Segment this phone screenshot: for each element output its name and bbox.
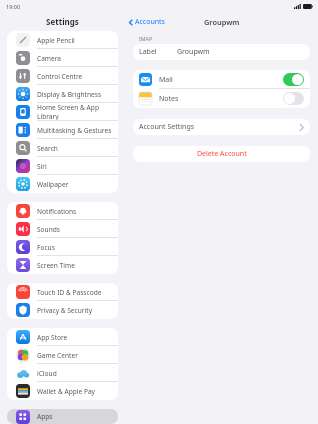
staticText: Home Screen & App Library xyxy=(37,103,118,121)
button[interactable]: Siri xyxy=(7,157,118,175)
button[interactable]: Notifications xyxy=(7,202,118,220)
button[interactable]: Account Settings xyxy=(133,119,310,135)
other: More xyxy=(299,123,304,132)
button[interactable]: Multitasking & Gestures xyxy=(7,121,118,139)
staticText: 19:00 xyxy=(6,3,21,10)
staticText: Multitasking & Gestures xyxy=(37,126,112,135)
button[interactable]: App Store xyxy=(7,328,118,346)
button[interactable]: Notes xyxy=(133,89,310,108)
staticText: Siri xyxy=(37,162,47,171)
button[interactable]: Home Screen & App Library xyxy=(7,103,118,121)
staticText: iCloud xyxy=(37,369,57,378)
staticText: Account Settings xyxy=(139,122,195,132)
staticText: Settings xyxy=(46,16,79,27)
staticText: Camera xyxy=(37,54,62,63)
button[interactable]: iCloud xyxy=(7,364,118,382)
button[interactable]: Apple Pencil xyxy=(7,31,118,49)
button[interactable]: Focus xyxy=(7,238,118,256)
staticText: Focus xyxy=(37,243,55,252)
button[interactable]: Display & Brightness xyxy=(7,85,118,103)
button[interactable]: Wallpaper xyxy=(7,175,118,193)
staticText: Accounts xyxy=(135,17,165,27)
staticText: Game Center xyxy=(37,351,78,360)
staticText: Mail xyxy=(159,75,173,85)
staticText: Privacy & Security xyxy=(37,306,92,315)
button[interactable]: Accounts xyxy=(125,15,169,29)
staticText: Delete Account xyxy=(197,149,247,159)
staticText: Notes xyxy=(159,94,179,104)
staticText: App Store xyxy=(37,333,68,342)
button[interactable]: Apps xyxy=(7,409,118,424)
button[interactable]: On xyxy=(283,73,304,86)
button[interactable]: Screen Time xyxy=(7,256,118,274)
staticText: Screen Time xyxy=(37,261,75,270)
staticText: Sounds xyxy=(37,225,60,234)
staticText: Wallpaper xyxy=(37,180,69,189)
staticText: IMAP xyxy=(139,35,153,42)
staticText: Apps xyxy=(37,412,53,421)
staticText: Label xyxy=(139,47,157,57)
button[interactable]: Search xyxy=(7,139,118,157)
button[interactable]: Mail xyxy=(133,70,310,89)
button[interactable]: Privacy & Security xyxy=(7,301,118,319)
staticText: Control Centre xyxy=(37,72,83,81)
button[interactable]: Camera xyxy=(7,49,118,67)
staticText: Apple Pencil xyxy=(37,36,75,45)
button[interactable]: Touch ID & Passcode xyxy=(7,283,118,301)
button[interactable]: Label xyxy=(133,44,310,60)
staticText: Wallet & Apple Pay xyxy=(37,387,95,396)
button[interactable]: Sounds xyxy=(7,220,118,238)
button[interactable]: Wallet & Apple Pay xyxy=(7,382,118,400)
staticText: Search xyxy=(37,144,58,153)
staticText: Groupwm xyxy=(177,47,210,57)
staticText: Notifications xyxy=(37,207,77,216)
button[interactable]: Delete Account xyxy=(133,146,310,162)
button[interactable]: Control Centre xyxy=(7,67,118,85)
staticText: Display & Brightness xyxy=(37,90,102,99)
staticText: Touch ID & Passcode xyxy=(37,288,102,297)
button[interactable]: Game Center xyxy=(7,346,118,364)
staticText: Groupwm xyxy=(204,17,240,27)
button[interactable]: Off xyxy=(283,92,304,105)
